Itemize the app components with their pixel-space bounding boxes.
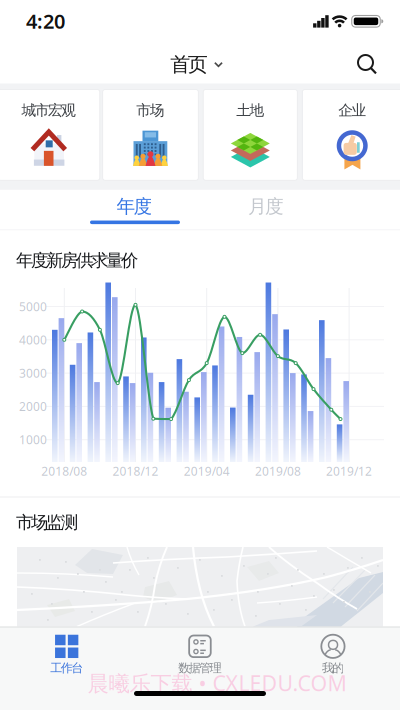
- staticText: 3000: [19, 365, 47, 381]
- button[interactable]: 年度: [69, 187, 199, 225]
- staticText: 2019/12: [326, 463, 372, 479]
- button[interactable]: 月度: [201, 187, 331, 225]
- button[interactable]: 土地: [203, 89, 297, 180]
- staticText: 4000: [19, 332, 47, 348]
- staticText: 2000: [19, 398, 47, 414]
- staticText: 年度新房供求量价: [16, 250, 138, 271]
- staticText: 城市宏观: [21, 101, 76, 119]
- staticText: 晨曦乐下载 • CXLEDU.COM: [87, 669, 346, 697]
- staticText: 企业: [338, 101, 366, 119]
- staticText: 4:20: [26, 8, 65, 34]
- staticText: 5000: [19, 298, 47, 314]
- staticText: 我的: [322, 660, 344, 675]
- staticText: 2018/08: [41, 463, 87, 479]
- staticText: 市场: [136, 101, 165, 119]
- button[interactable]: 首页: [157, 43, 237, 85]
- staticText: 工作台: [50, 660, 83, 675]
- button[interactable]: 我的: [273, 627, 393, 683]
- staticText: 年度: [116, 195, 152, 218]
- staticText: 土地: [236, 101, 264, 119]
- staticText: 首页: [170, 52, 208, 77]
- staticText: 月度: [248, 195, 284, 218]
- staticText: 1000: [19, 432, 47, 448]
- staticText: 2019/04: [184, 463, 230, 479]
- button[interactable]: 搜索: [351, 49, 381, 79]
- button[interactable]: 市场: [103, 89, 198, 180]
- staticText: 2019/08: [255, 463, 301, 479]
- button[interactable]: 数据管理: [140, 627, 260, 683]
- button[interactable]: 工作台: [7, 627, 127, 683]
- staticText: 数据管理: [178, 660, 222, 675]
- staticText: 市场监测: [16, 512, 78, 533]
- staticText: 2018/12: [112, 463, 158, 479]
- button[interactable]: 市场监测地图: [17, 547, 383, 626]
- button[interactable]: 企业: [302, 89, 400, 180]
- button[interactable]: 城市宏观: [0, 89, 100, 180]
